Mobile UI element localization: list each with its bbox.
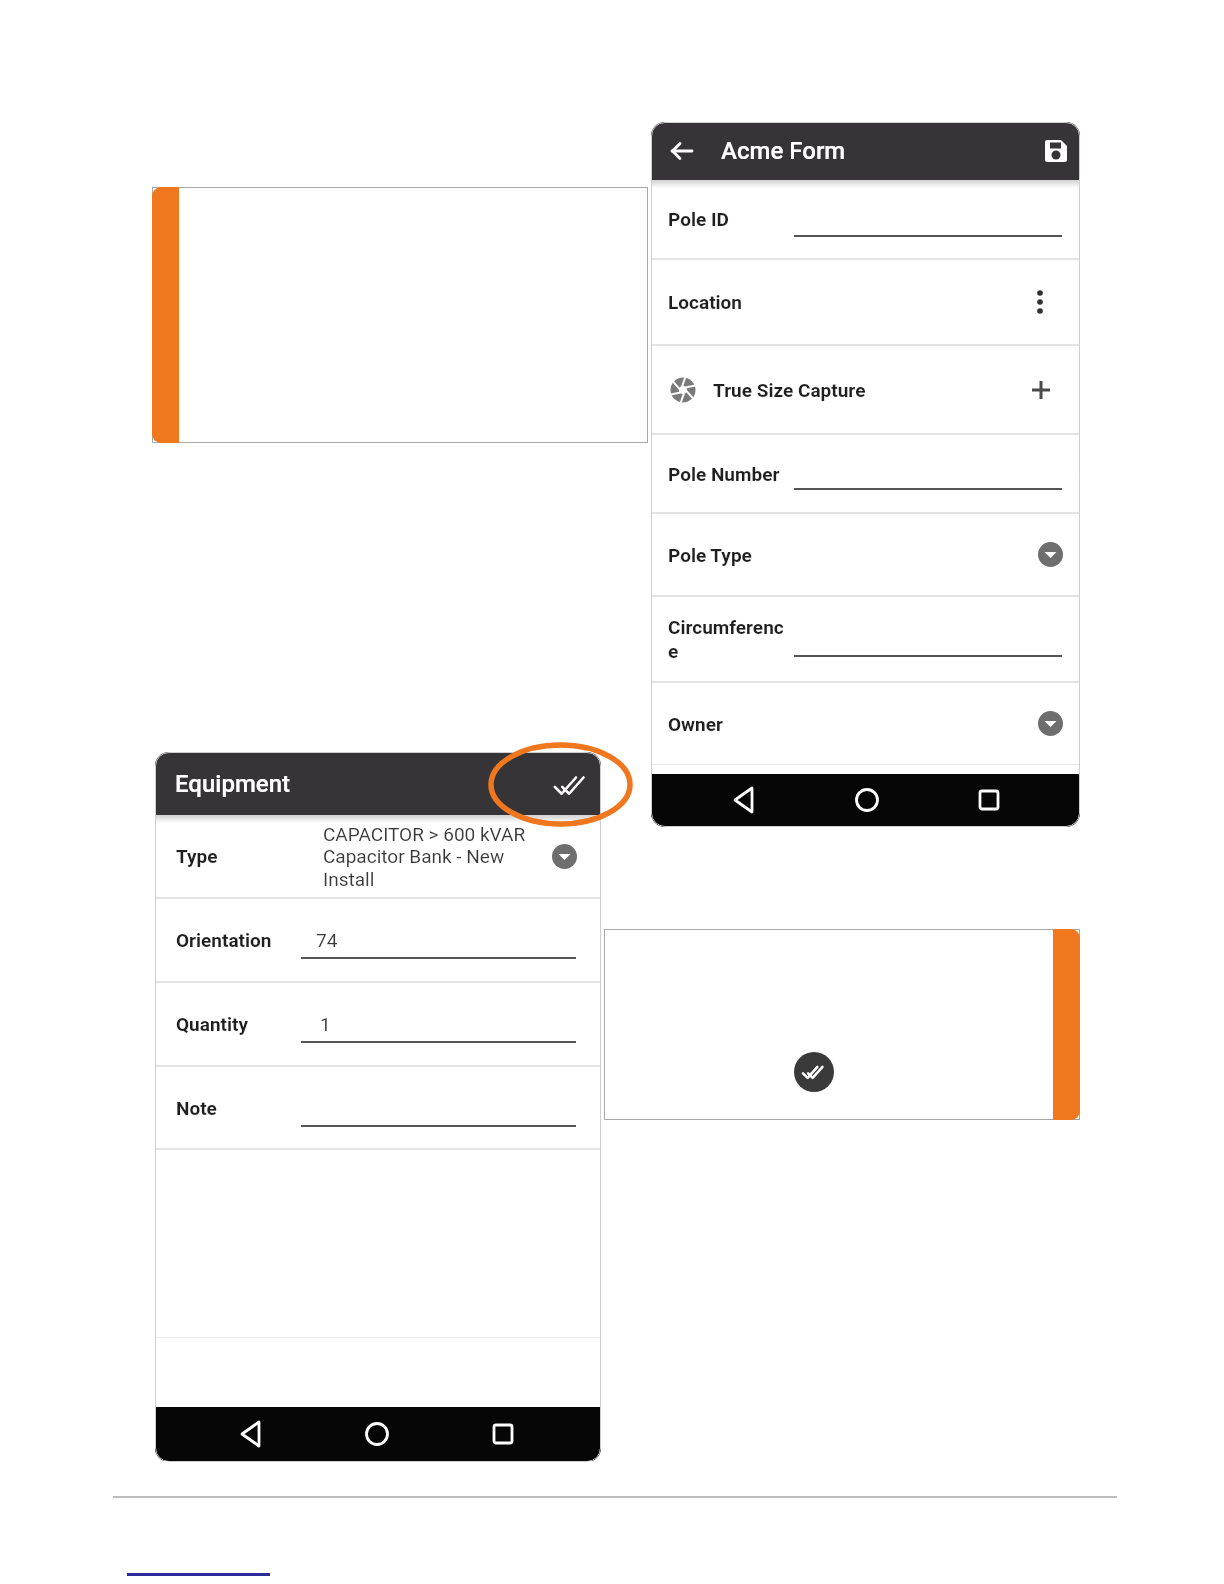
button[interactable]: Pole ID <box>651 180 1080 258</box>
staticText: Pole Number <box>668 463 780 485</box>
button[interactable]: Pole Type <box>651 514 1080 595</box>
staticText: Circumferenc e <box>668 616 784 663</box>
staticText: Location <box>668 291 742 313</box>
staticText: Equipment <box>175 770 291 798</box>
button[interactable]: Orientation <box>155 899 601 981</box>
button[interactable] <box>669 138 695 164</box>
button[interactable] <box>1043 138 1069 164</box>
button[interactable]: True Size Capture <box>651 346 1080 433</box>
staticText: Acme Form <box>721 137 846 165</box>
button[interactable]: Note <box>155 1067 601 1148</box>
button[interactable]: Location <box>651 260 1080 344</box>
button[interactable] <box>362 1419 392 1449</box>
button[interactable] <box>731 785 761 815</box>
staticText: Orientation <box>176 929 272 951</box>
button[interactable]: Type <box>155 815 601 897</box>
staticText: Note <box>176 1097 217 1119</box>
button[interactable]: Quantity <box>155 983 601 1065</box>
button[interactable] <box>488 1419 518 1449</box>
staticText: 1 <box>320 1013 331 1035</box>
button[interactable]: Circumferenc e <box>651 597 1080 681</box>
staticText: Pole ID <box>668 208 729 230</box>
staticText: CAPACITOR > 600 kVAR Capacitor Bank - Ne… <box>323 823 526 890</box>
button[interactable]: Pole Number <box>651 435 1080 512</box>
staticText: Quantity <box>176 1013 249 1035</box>
button[interactable] <box>852 785 882 815</box>
button[interactable] <box>554 767 588 801</box>
staticText: True Size Capture <box>713 379 866 401</box>
staticText: Owner <box>668 713 723 735</box>
staticText: Type <box>176 845 218 867</box>
staticText: 74 <box>316 929 338 951</box>
button[interactable]: Owner <box>651 683 1080 764</box>
staticText: Pole Type <box>668 544 752 566</box>
button[interactable] <box>974 785 1004 815</box>
button[interactable] <box>238 1419 268 1449</box>
